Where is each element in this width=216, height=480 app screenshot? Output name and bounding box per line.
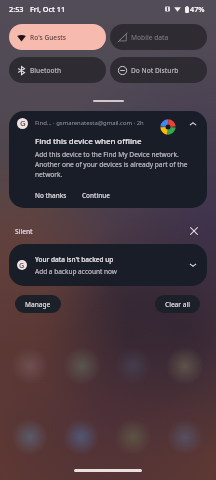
button[interactable]: Ro's Guests	[9, 24, 106, 50]
staticText: 2:53	[9, 4, 24, 14]
staticText: Ro's Guests	[30, 33, 67, 42]
button[interactable]: Expand notification	[186, 258, 200, 272]
staticText: Do Not Disturb	[131, 66, 179, 75]
staticText: Find this device when offline	[35, 136, 142, 147]
button[interactable]: Do Not Disturb	[110, 57, 207, 83]
staticText: Find... · gsmarenatesta@gmail.com · 2h	[35, 119, 144, 127]
staticText: Add this device to the Find My Device ne…	[35, 150, 199, 179]
staticText: G	[19, 260, 25, 270]
button[interactable]: G	[9, 244, 207, 286]
staticText: Fri, Oct 11	[30, 4, 66, 14]
staticText: Manage	[25, 300, 51, 309]
staticText: Add a backup account now	[35, 267, 117, 276]
button[interactable]: Clear silent notifications	[187, 224, 201, 238]
staticText: G	[20, 118, 26, 129]
button[interactable]: Bluetooth	[9, 57, 106, 83]
button[interactable]: Continue	[77, 188, 115, 202]
staticText: No thanks	[35, 191, 67, 200]
staticText: Bluetooth	[30, 66, 62, 75]
staticText: 47%	[190, 4, 205, 14]
button[interactable]: No thanks	[30, 188, 72, 202]
button[interactable]	[9, 111, 207, 208]
staticText: Silent	[15, 227, 33, 236]
button[interactable]: Collapse notification	[186, 117, 200, 131]
button[interactable]: Mobile data	[110, 24, 207, 50]
button[interactable]: Manage	[15, 295, 61, 313]
staticText: Your data isn't backed up	[35, 255, 114, 264]
button[interactable]: Clear all	[155, 295, 200, 313]
staticText: Mobile data	[131, 33, 169, 42]
staticText: Continue	[82, 191, 110, 200]
staticText: Clear all	[165, 300, 190, 309]
